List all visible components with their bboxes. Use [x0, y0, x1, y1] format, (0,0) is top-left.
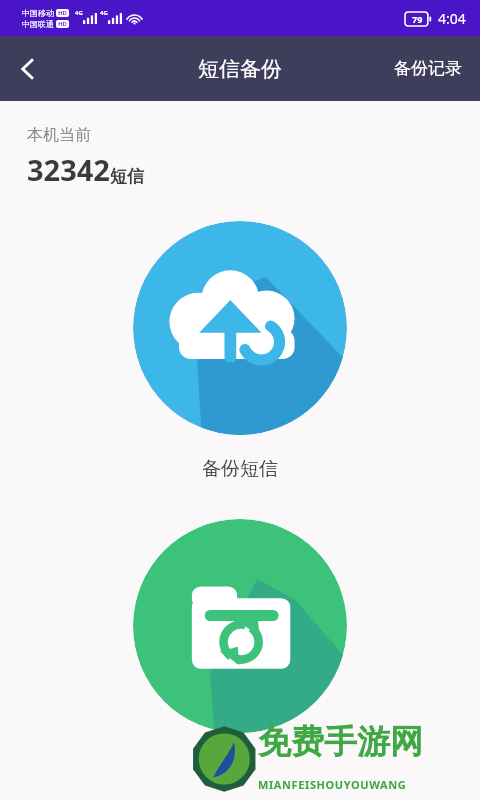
staticText: 备份短信: [202, 457, 278, 481]
button[interactable]: 恢复短信: [133, 519, 347, 733]
staticText: 免费手游网: [258, 721, 423, 763]
staticText: 79: [412, 13, 423, 25]
staticText: 中国移动: [22, 8, 54, 18]
staticText: 本机当前: [27, 125, 91, 145]
staticText: 4G: [100, 9, 108, 17]
button[interactable]: 返回: [0, 41, 56, 97]
staticText: MIANFEISHOUYOUWANG: [258, 777, 407, 792]
staticText: 4G: [75, 9, 83, 17]
staticText: HD: [58, 9, 67, 17]
staticText: 中国联通: [22, 19, 54, 29]
button[interactable]: 备份记录: [376, 48, 480, 89]
staticText: 短信: [110, 166, 144, 187]
staticText: HD: [58, 20, 67, 28]
staticText: 32342: [27, 150, 110, 189]
staticText: 短信备份: [198, 56, 282, 82]
staticText: 备份记录: [394, 58, 462, 79]
staticText: 4:04: [438, 9, 466, 28]
button[interactable]: 备份短信: [133, 221, 347, 435]
